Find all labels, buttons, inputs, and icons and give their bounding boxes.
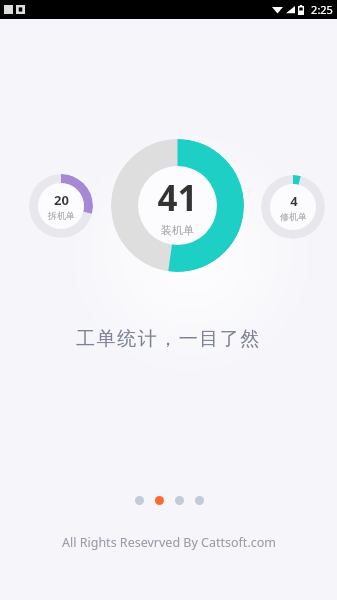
staticText: 20: [54, 191, 69, 209]
staticText: 装机单: [161, 223, 194, 237]
staticText: 4: [290, 192, 298, 210]
button[interactable]: 装机单 41: [111, 139, 244, 272]
staticText: 41: [157, 174, 198, 222]
button[interactable]: 拆机单 20: [29, 174, 93, 238]
staticText: 2:25: [311, 2, 333, 17]
staticText: All Rights Resevrved By Cattsoft.com: [62, 534, 276, 551]
staticText: 修机单: [280, 211, 307, 222]
button[interactable]: [149, 490, 169, 510]
staticText: 拆机单: [48, 210, 75, 221]
button[interactable]: [169, 490, 189, 510]
button[interactable]: [129, 490, 149, 510]
staticText: 工单统计，一目了然: [76, 327, 261, 351]
button[interactable]: 修机单 4: [261, 175, 325, 239]
button[interactable]: [189, 490, 209, 510]
